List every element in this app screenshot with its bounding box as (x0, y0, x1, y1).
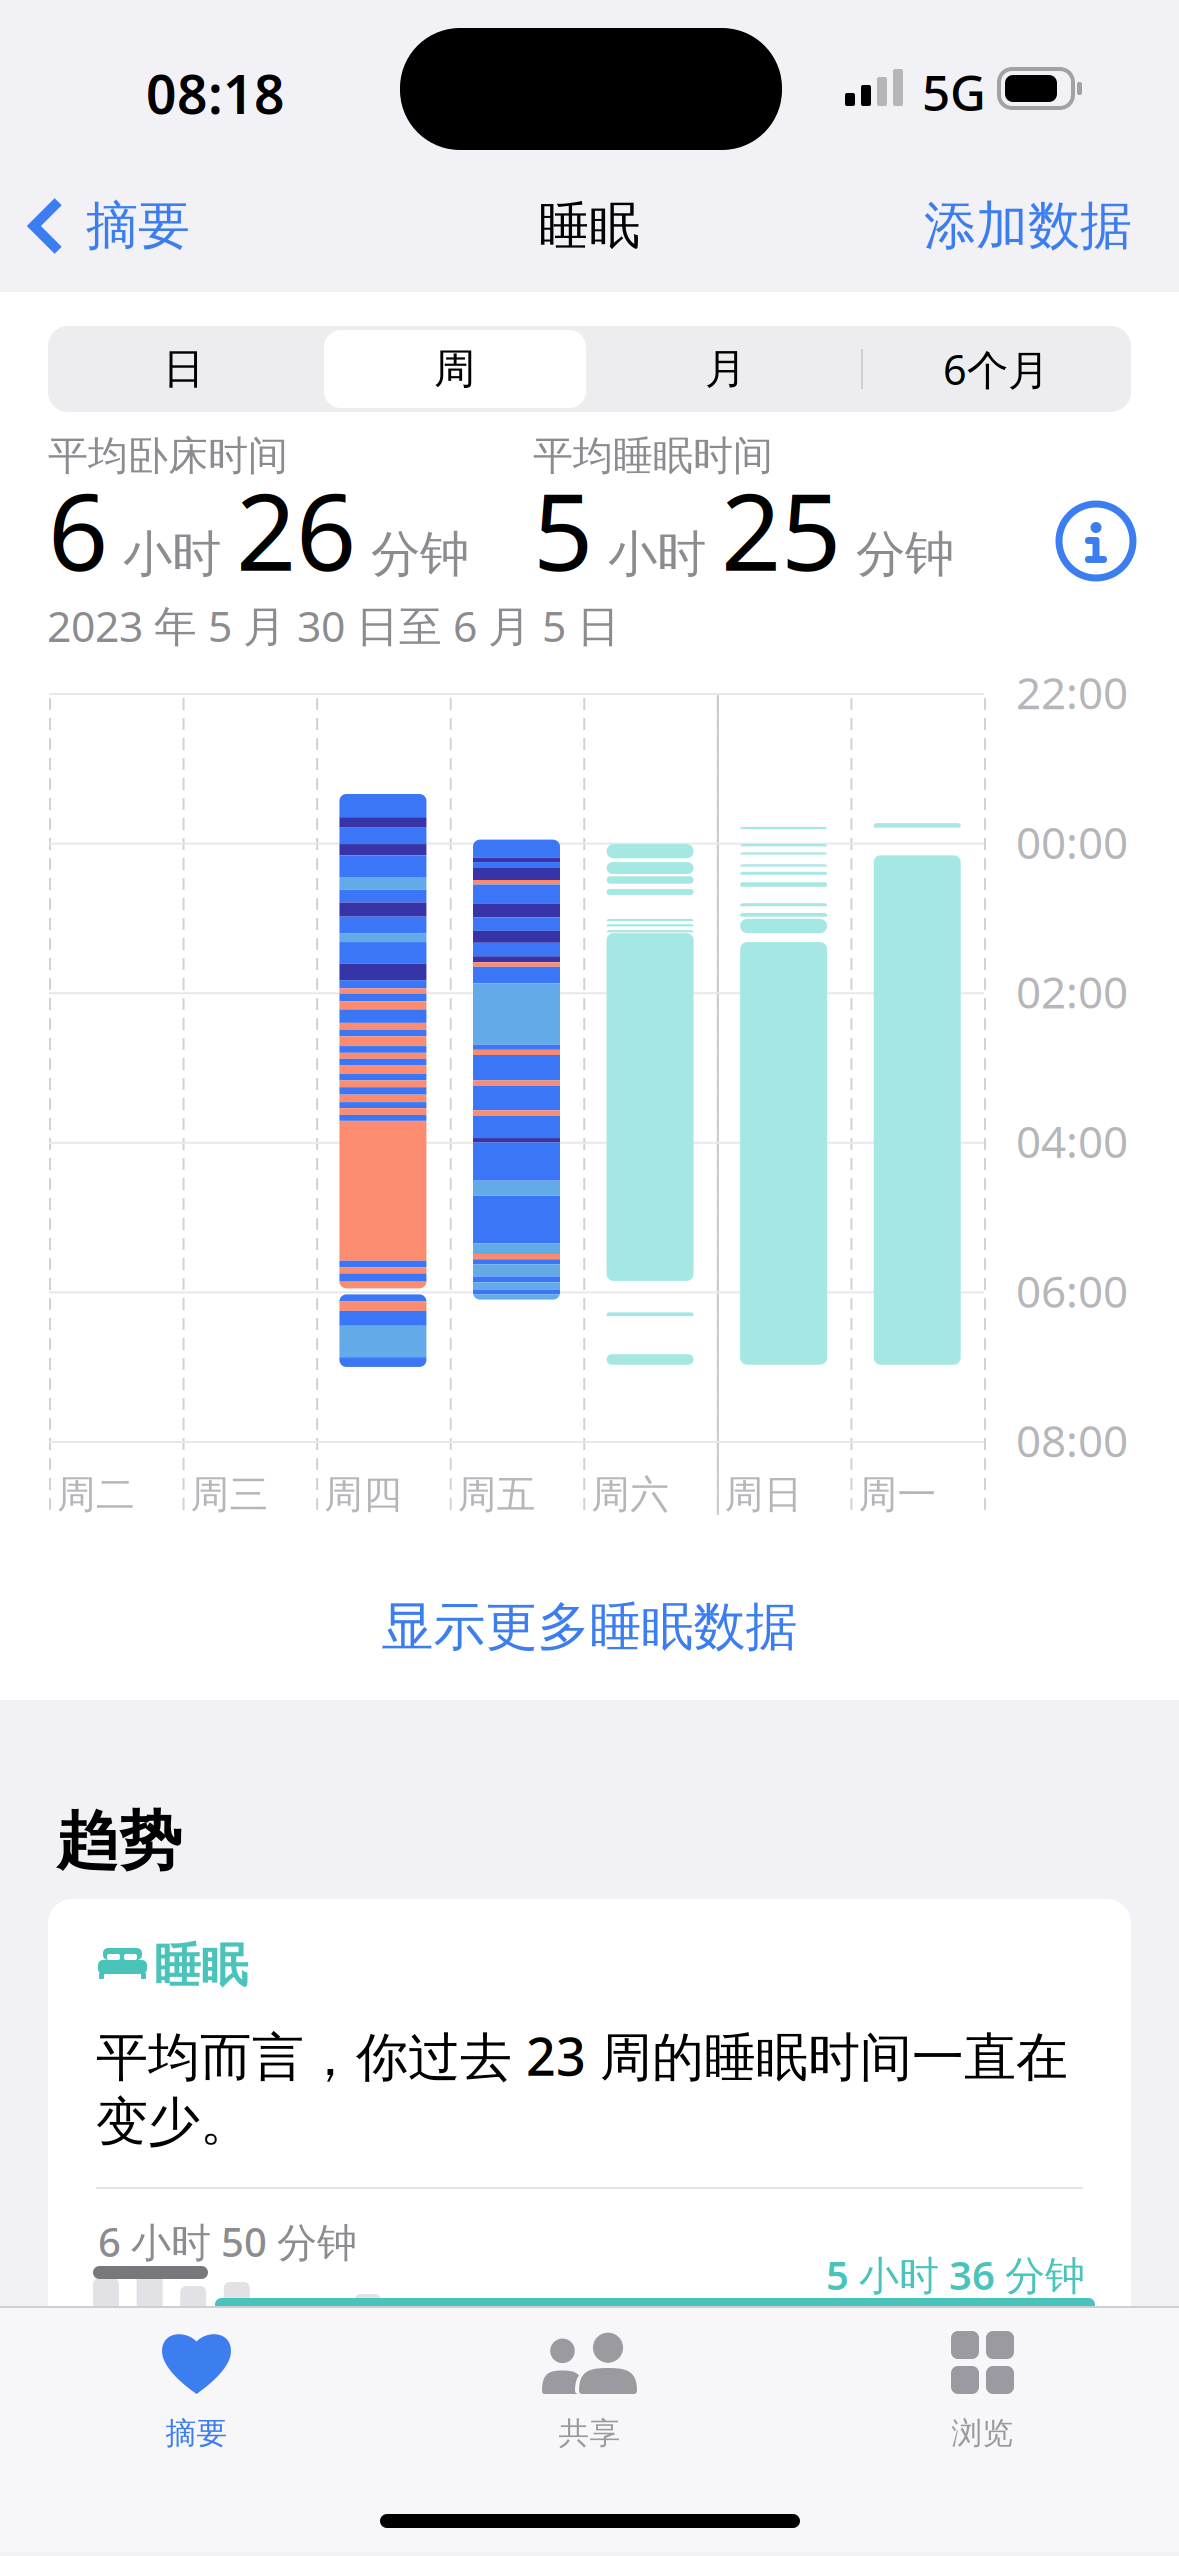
button[interactable]: 周 (319, 326, 590, 412)
staticText: 6个月 (943, 342, 1049, 396)
staticText: 周五 (458, 1471, 536, 1518)
button[interactable]: 显示更多睡眠数据 (0, 1579, 1179, 1675)
staticText: 分钟 (841, 524, 954, 585)
staticText: 摘要 (86, 194, 190, 258)
staticText: 摘要 (165, 2414, 227, 2452)
staticText: 5 小时 36 分钟 (826, 2248, 1085, 2301)
staticText: 周二 (57, 1471, 135, 1518)
staticText: 添加数据 (924, 194, 1132, 258)
staticText: 5 (533, 460, 593, 600)
staticText: 04:00 (1016, 1112, 1128, 1170)
button[interactable]: 6个月 (861, 326, 1131, 412)
staticText: 6 小时 50 分钟 (98, 2215, 357, 2268)
staticText: 22:00 (1016, 663, 1128, 721)
staticText: 睡眠 (154, 1937, 248, 1994)
staticText: 周日 (725, 1471, 803, 1518)
staticText: 26 (236, 460, 356, 600)
staticText: 日 (163, 344, 204, 394)
button[interactable]: 添加数据 (918, 182, 1138, 270)
button[interactable]: 摘要 (0, 2324, 393, 2452)
staticText: 00:00 (1016, 813, 1128, 871)
button[interactable]: 月 (590, 326, 861, 412)
staticText: 2023 年 5 月 30 日至 6 月 5 日 (47, 597, 620, 654)
staticText: 08:00 (1016, 1411, 1128, 1469)
staticText: 趋势 (56, 1803, 182, 1880)
staticText: 周三 (191, 1471, 269, 1518)
staticText: 02:00 (1016, 962, 1128, 1021)
staticText: 平均而言，你过去 23 周的睡眠时间一直在变少。 (96, 2021, 1068, 2154)
staticText: 月 (705, 344, 746, 394)
button[interactable]: 摘要 (26, 182, 194, 270)
staticText: 小时 (593, 524, 721, 585)
staticText: 08:18 (146, 58, 285, 129)
staticText: 平均睡眠时间 (533, 431, 773, 480)
staticText: 周 (434, 344, 475, 394)
button[interactable]: 共享 (393, 2324, 786, 2452)
staticText: 共享 (558, 2414, 620, 2452)
staticText: 周一 (858, 1471, 936, 1518)
staticText: 5G (922, 59, 986, 124)
staticText: 浏览 (951, 2414, 1013, 2452)
button[interactable]: 日 (48, 326, 319, 412)
staticText: 周四 (324, 1471, 402, 1518)
staticText: 小时 (108, 524, 236, 585)
button[interactable]: 信息 (1059, 504, 1133, 578)
button[interactable]: 浏览 (786, 2324, 1179, 2452)
staticText: 睡眠 (538, 195, 640, 257)
staticText: 分钟 (356, 524, 469, 585)
staticText: 周六 (591, 1471, 669, 1518)
staticText: 25 (721, 460, 841, 600)
staticText: 显示更多睡眠数据 (381, 1595, 797, 1659)
staticText: 平均卧床时间 (48, 431, 288, 480)
staticText: 06:00 (1016, 1261, 1128, 1320)
staticText: 6 (48, 460, 108, 600)
